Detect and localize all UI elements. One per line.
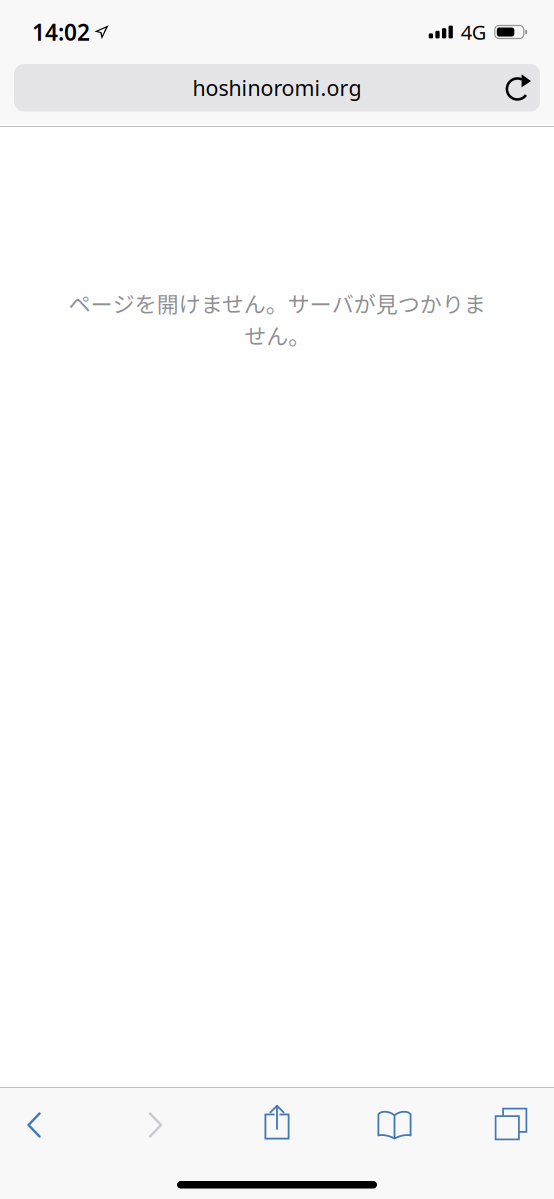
staticText: hoshinoromi.org <box>192 74 361 102</box>
staticText: ページを開けません。サーバが見つかりません。 <box>68 287 485 351</box>
staticText: 4G <box>461 19 487 45</box>
button[interactable]: Forward <box>121 1090 189 1150</box>
staticText: 14:02 <box>32 17 90 47</box>
button[interactable]: Bookmarks <box>364 1090 432 1150</box>
button[interactable]: Reload <box>496 64 542 111</box>
button[interactable]: Back <box>0 1090 68 1150</box>
button[interactable]: Share <box>243 1090 311 1150</box>
button[interactable]: Tabs <box>486 1090 554 1150</box>
